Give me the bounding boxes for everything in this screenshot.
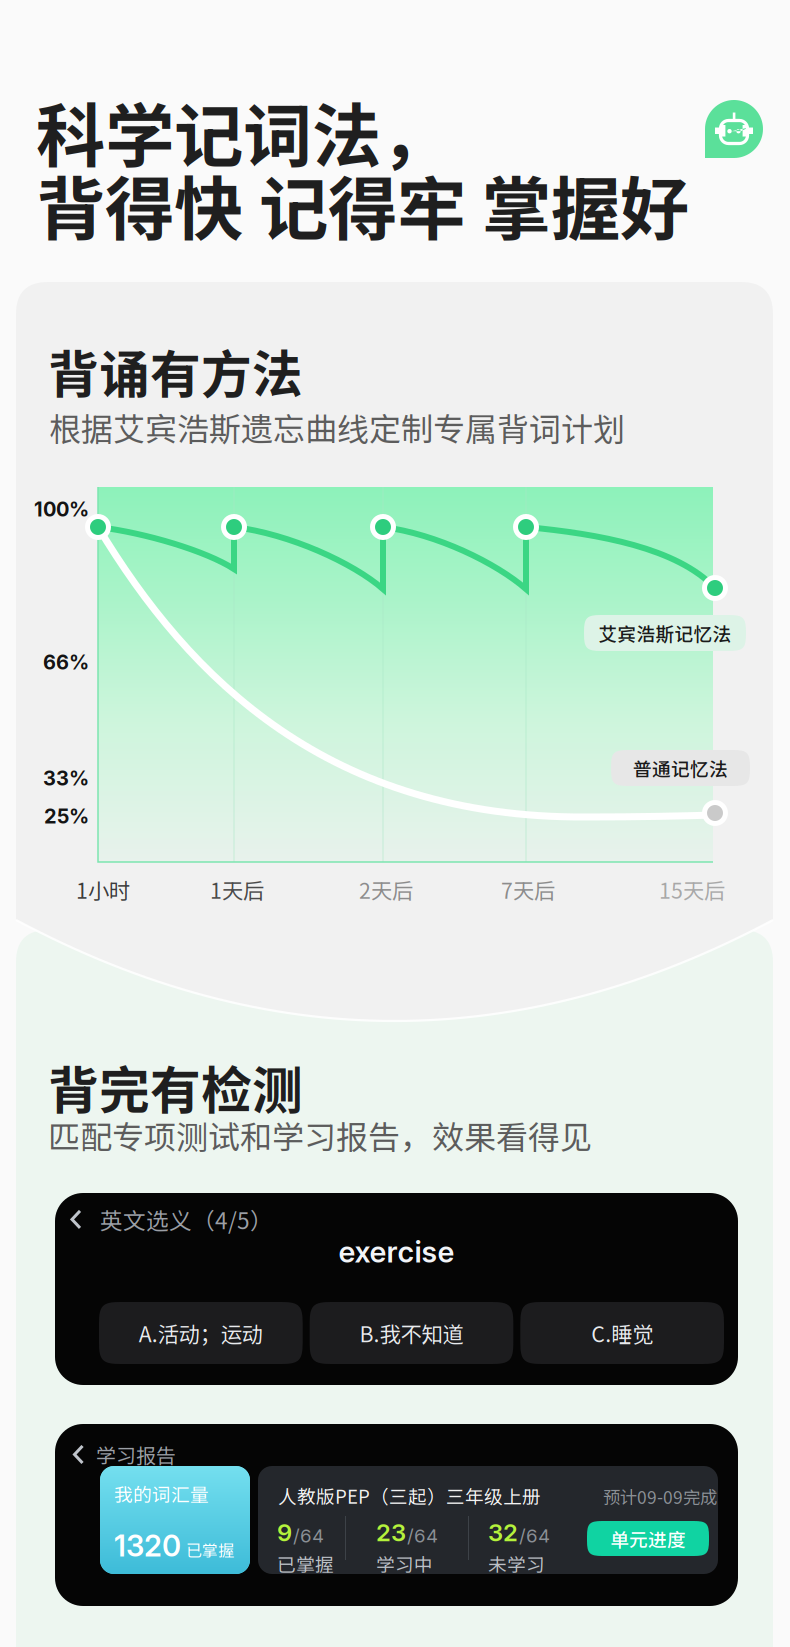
staticText: 预计09-09完成 — [603, 1484, 717, 1509]
button[interactable]: A.活动；运动 — [99, 1302, 303, 1364]
staticText: 普通记忆法 — [633, 754, 728, 781]
button[interactable]: C.睡觉 — [520, 1302, 724, 1364]
button[interactable]: 学习报告 — [55, 1434, 176, 1475]
staticText: 根据艾宾浩斯遗忘曲线定制专属背词计划 — [49, 404, 625, 450]
staticText: B.我不知道 — [359, 1318, 463, 1348]
staticText: 学习中 — [376, 1550, 433, 1577]
button[interactable]: B.我不知道 — [310, 1302, 513, 1364]
staticText: exercise — [338, 1234, 454, 1269]
staticText: 66% — [43, 650, 89, 674]
staticText: 背诵有方法 — [48, 334, 303, 407]
staticText: 1天后 — [210, 874, 264, 905]
staticText: A.活动；运动 — [139, 1318, 263, 1348]
staticText: 33% — [43, 766, 89, 790]
staticText: 32 — [488, 1518, 518, 1547]
staticText: 9 — [277, 1518, 292, 1547]
staticText: 15天后 — [659, 874, 725, 905]
staticText: 已掌握 — [186, 1538, 234, 1561]
staticText: 已掌握 — [277, 1550, 334, 1577]
staticText: /64 — [407, 1524, 438, 1547]
staticText: /64 — [519, 1524, 550, 1547]
staticText: 英文选义（4/5） — [100, 1203, 273, 1236]
staticText: 2天后 — [359, 874, 413, 905]
staticText: 7天后 — [501, 874, 555, 905]
staticText: 匹配专项测试和学习报告，效果看得见 — [48, 1112, 592, 1158]
staticText: 1320 — [114, 1528, 181, 1563]
staticText: 单元进度 — [610, 1525, 686, 1552]
staticText: 1小时 — [76, 874, 130, 905]
staticText: 23 — [376, 1518, 406, 1547]
staticText: 背完有检测 — [48, 1050, 303, 1123]
staticText: 25% — [44, 804, 89, 828]
staticText: /64 — [293, 1524, 324, 1547]
staticText: 未学习 — [488, 1550, 545, 1577]
staticText: 人教版PEP（三起）三年级上册 — [278, 1482, 541, 1509]
staticText: C.睡觉 — [591, 1318, 653, 1348]
button[interactable]: AI 助手 — [705, 100, 763, 158]
staticText: 100% — [34, 497, 89, 521]
staticText: 科学记词法， — [36, 81, 450, 181]
staticText: 艾宾浩斯记忆法 — [598, 619, 731, 646]
button[interactable]: 单元进度 — [587, 1521, 709, 1556]
staticText: 背得快 记得牢 掌握好 — [36, 154, 689, 254]
staticText: 学习报告 — [96, 1440, 176, 1469]
staticText: 我的词汇量 — [114, 1480, 209, 1507]
button[interactable]: 英文选义（4/5） — [55, 1198, 283, 1241]
